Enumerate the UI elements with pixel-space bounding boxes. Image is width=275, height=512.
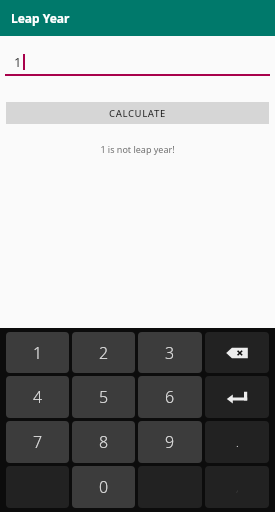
staticText: 5 bbox=[99, 386, 109, 408]
button[interactable]: 0 bbox=[72, 466, 135, 508]
button[interactable]: 9 bbox=[138, 421, 202, 463]
button[interactable]: 5 bbox=[72, 376, 135, 418]
button[interactable]: 4 bbox=[6, 376, 69, 418]
staticText: Leap Year bbox=[11, 10, 70, 26]
staticText: , bbox=[236, 480, 239, 495]
staticText: 4 bbox=[33, 386, 43, 408]
staticText: . bbox=[236, 435, 239, 450]
button[interactable]: 1 bbox=[6, 332, 69, 373]
button[interactable]: 1 bbox=[5, 52, 270, 76]
button[interactable]: 6 bbox=[138, 376, 202, 418]
staticText: 1 bbox=[14, 53, 22, 71]
button[interactable]: 8 bbox=[72, 421, 135, 463]
staticText: CALCULATE bbox=[109, 107, 166, 120]
button[interactable]: . bbox=[205, 421, 269, 463]
staticText: 6 bbox=[165, 386, 175, 408]
staticText: 1 is not leap year! bbox=[0, 143, 275, 155]
button[interactable]: 7 bbox=[6, 421, 69, 463]
button[interactable]: CALCULATE bbox=[6, 102, 269, 124]
button[interactable]: 3 bbox=[138, 332, 202, 373]
button[interactable]: Enter bbox=[205, 376, 269, 418]
staticText: 1 bbox=[33, 342, 43, 364]
staticText: 8 bbox=[99, 431, 109, 453]
staticText: 0 bbox=[99, 476, 109, 498]
staticText: 7 bbox=[33, 431, 43, 453]
button[interactable]: Backspace bbox=[205, 332, 269, 373]
button[interactable]: 2 bbox=[72, 332, 135, 373]
staticText: 3 bbox=[165, 342, 175, 364]
staticText: 9 bbox=[165, 431, 175, 453]
staticText: 2 bbox=[99, 342, 109, 364]
